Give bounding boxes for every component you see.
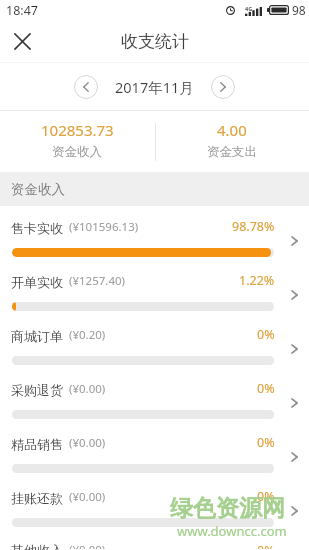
staticText: 资金收入 — [11, 181, 65, 198]
button[interactable]: Close — [0, 20, 44, 62]
staticText: 98.78% — [232, 218, 275, 235]
staticText: (¥0.00) — [66, 381, 106, 397]
staticText: 4G — [245, 5, 253, 12]
button[interactable]: 售卡实收 — [0, 206, 309, 260]
staticText: 挂账还款 — [11, 490, 63, 506]
staticText: (¥0.20) — [66, 327, 106, 343]
button[interactable]: 开单实收 — [0, 260, 309, 314]
staticText: 0% — [257, 326, 275, 343]
staticText: 收支统计 — [121, 31, 189, 52]
button[interactable]: 商城订单 — [0, 314, 309, 368]
staticText: 1.22% — [239, 272, 275, 289]
staticText: (¥1257.40) — [66, 273, 126, 289]
button[interactable]: 挂账还款 — [0, 476, 309, 530]
staticText: 售卡实收 — [11, 220, 63, 236]
staticText: 0% — [257, 542, 275, 549]
staticText: 0% — [257, 380, 275, 397]
staticText: 2017年11月 — [115, 77, 194, 97]
staticText: 0% — [257, 434, 275, 451]
staticText: 0% — [257, 488, 275, 505]
button[interactable]: Next month — [211, 75, 235, 99]
button[interactable]: 采购退货 — [0, 368, 309, 422]
staticText: 商城订单 — [11, 328, 63, 344]
button[interactable]: 精品销售 — [0, 422, 309, 476]
staticText: (¥0.00) — [66, 542, 106, 549]
button[interactable]: Previous month — [74, 75, 98, 99]
staticText: 精品销售 — [11, 436, 63, 452]
staticText: (¥0.00) — [66, 435, 106, 451]
staticText: (¥101596.13) — [66, 219, 139, 235]
button[interactable]: 其他收入 — [0, 530, 309, 550]
staticText: 开单实收 — [11, 274, 63, 290]
staticText: 绿色资源网 — [170, 494, 285, 523]
staticText: www.downcc.com — [177, 522, 287, 540]
staticText: 采购退货 — [11, 382, 63, 398]
staticText: 18:47 — [6, 2, 38, 19]
staticText: (¥0.00) — [66, 489, 106, 505]
staticText: 其他收入 — [11, 542, 63, 550]
staticText: 98 — [292, 2, 306, 18]
staticText: 102853.73 — [41, 120, 114, 140]
staticText: 4.00 — [217, 120, 247, 140]
staticText: 资金支出 — [207, 144, 257, 160]
staticText: 资金收入 — [52, 144, 102, 160]
